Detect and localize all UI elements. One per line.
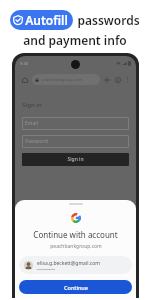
staticText: peachbankgroup.com: [41, 77, 83, 82]
button[interactable]: New tab: [101, 74, 112, 85]
button[interactable]: Page info: [112, 74, 123, 85]
staticText: Sign in: [22, 101, 42, 109]
staticText: Continue: [64, 284, 88, 291]
button[interactable]: Sign in: [22, 153, 129, 166]
staticText: 9:30: [20, 61, 28, 66]
staticText: and payment info: [23, 32, 127, 48]
button[interactable]: Home: [19, 74, 30, 85]
button[interactable]: Password: [22, 135, 129, 148]
staticText: Continue with account: [33, 229, 118, 240]
staticText: elisa.g.beckett@gmail.com: [37, 260, 100, 267]
button[interactable]: Autofill: [10, 10, 73, 30]
button[interactable]: Email: [22, 117, 129, 130]
button[interactable]: peachbankgroup.com: [32, 74, 100, 85]
staticText: Email: [25, 120, 38, 127]
button[interactable]: Continue: [19, 280, 132, 294]
button[interactable]: More options: [123, 75, 132, 84]
staticText: peachbankgroup.com: [50, 243, 102, 250]
staticText: Autofill: [25, 12, 68, 28]
staticText: Password: [25, 138, 48, 145]
staticText: passwords: [77, 12, 140, 28]
staticText: Sign in: [67, 156, 84, 163]
button[interactable]: elisa.g.beckett@gmail.com: [19, 256, 132, 274]
